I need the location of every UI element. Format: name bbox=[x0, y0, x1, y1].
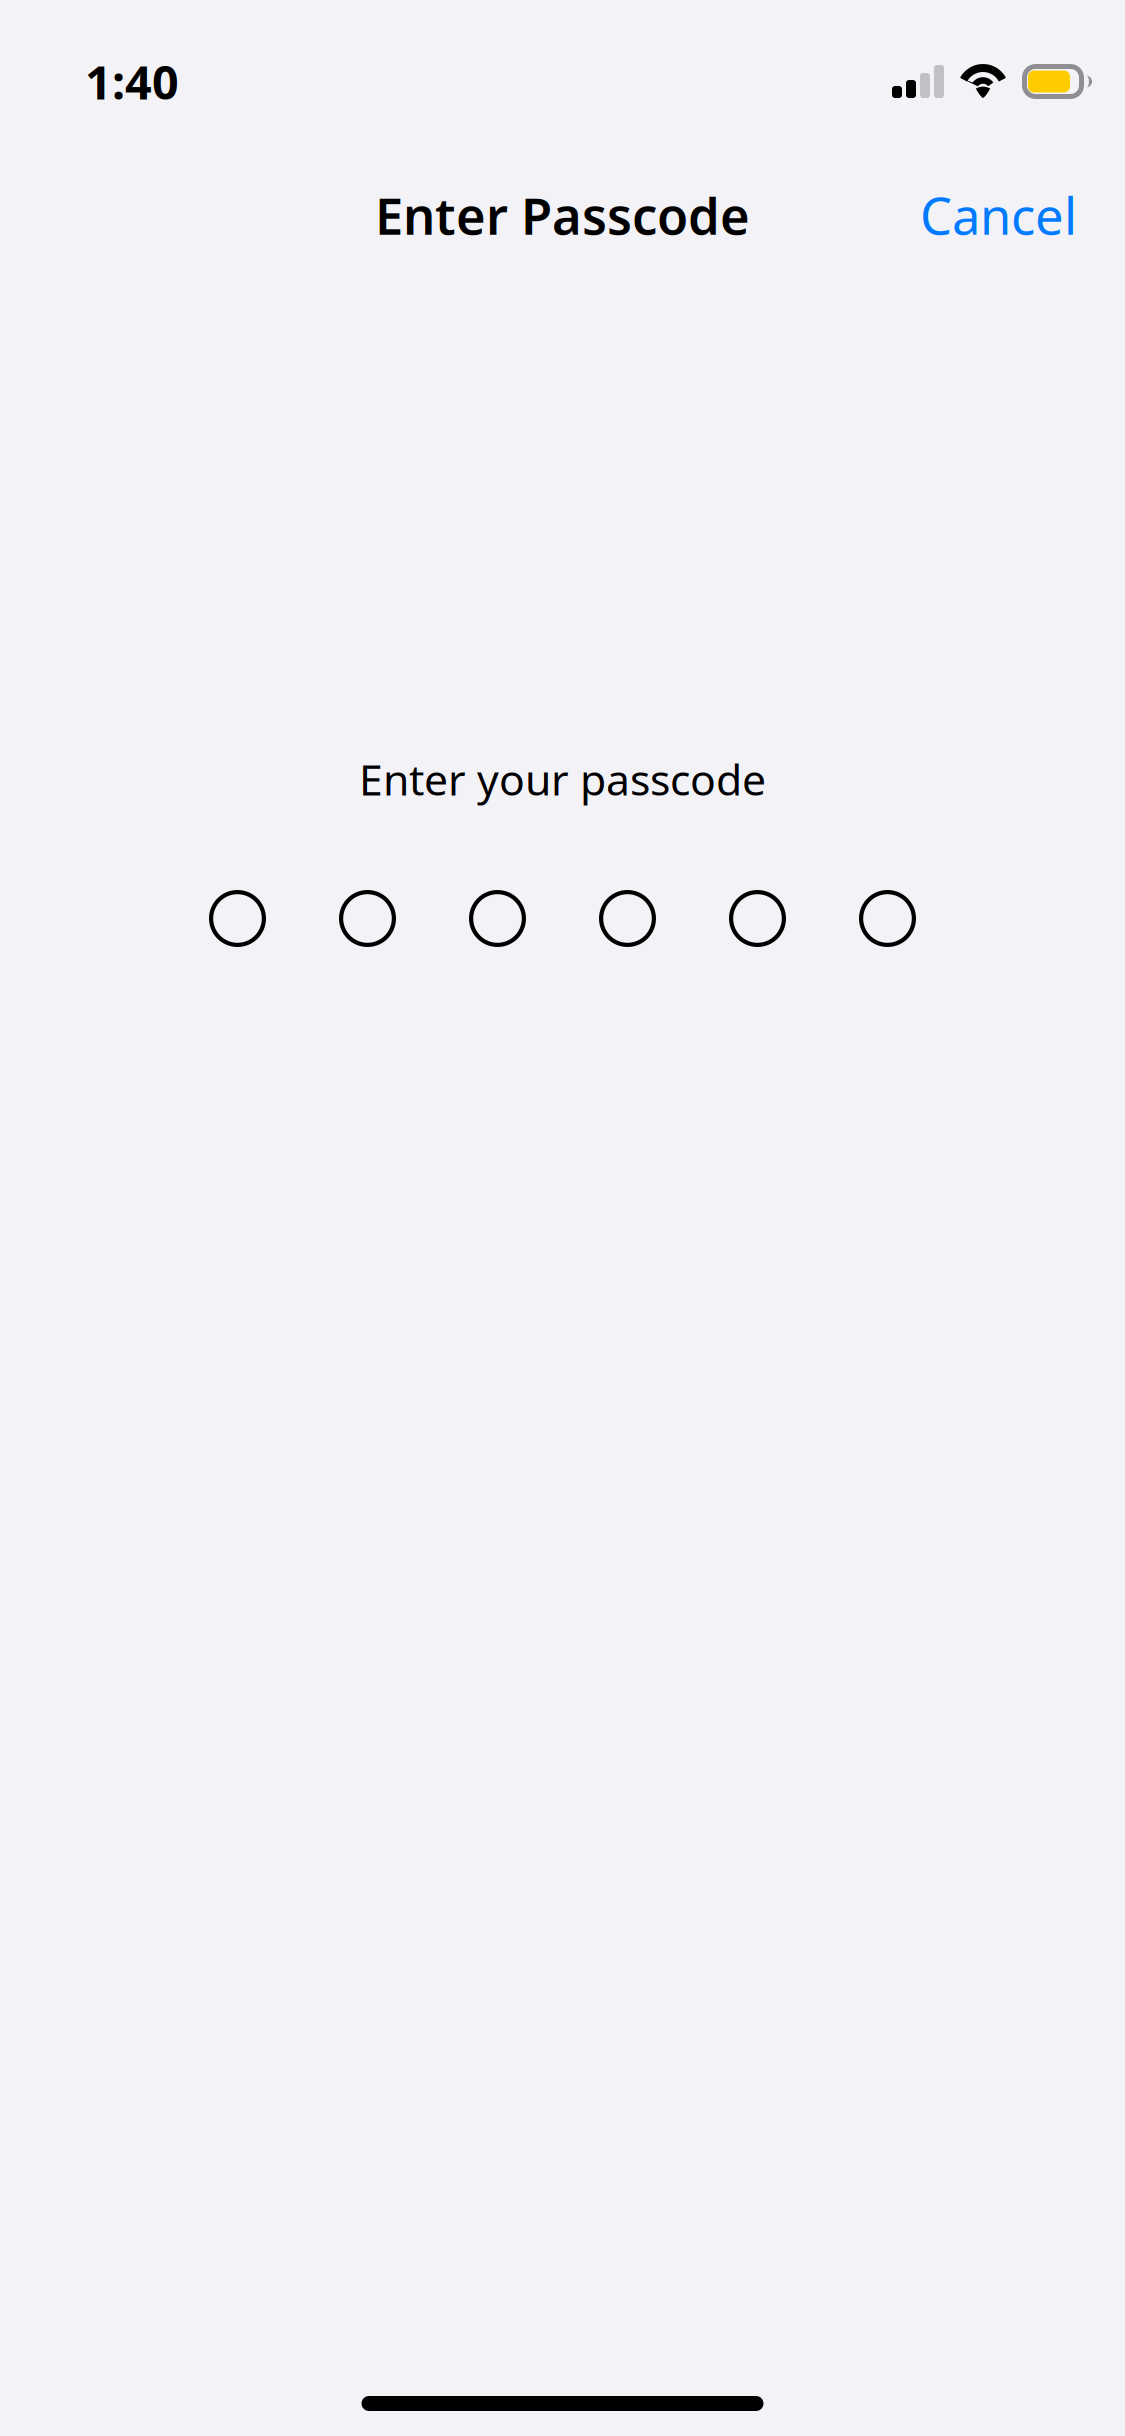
staticText: 1:40 bbox=[85, 50, 179, 112]
staticText: Enter your passcode bbox=[359, 751, 766, 807]
staticText: Cancel bbox=[920, 181, 1077, 249]
staticText: Enter Passcode bbox=[375, 181, 750, 249]
button[interactable]: Cancel bbox=[884, 163, 1125, 267]
